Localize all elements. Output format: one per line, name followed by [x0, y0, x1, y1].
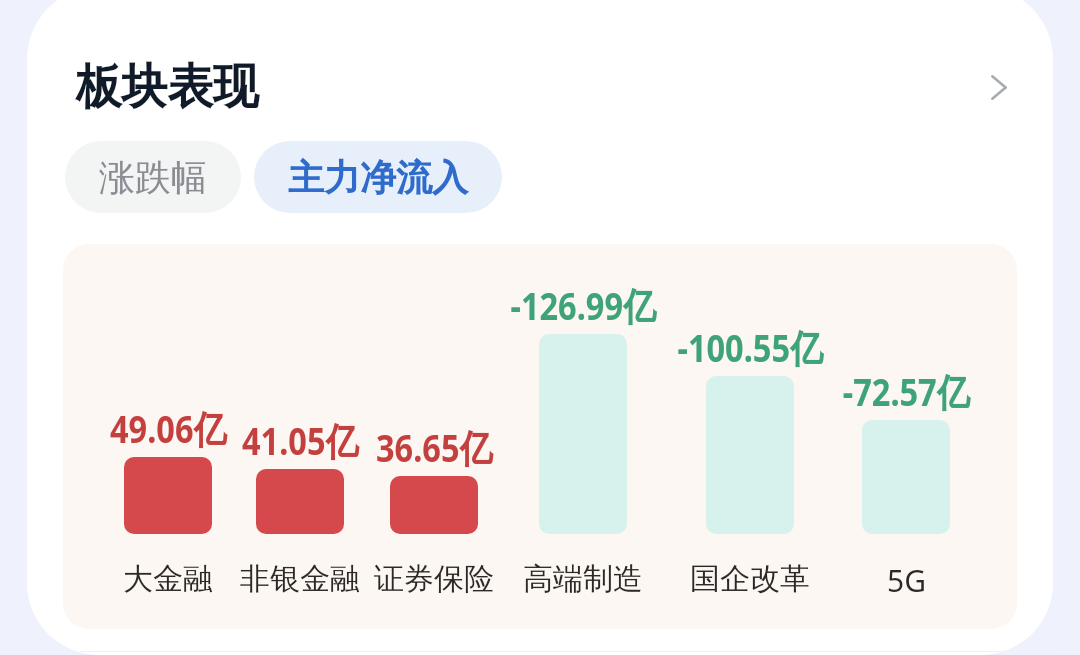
staticText: 涨跌幅 [99, 155, 207, 200]
staticText: 板块表现 [76, 57, 258, 117]
staticText: 证券保险 [374, 560, 494, 598]
button[interactable]: 板块表现 [27, 48, 1053, 126]
staticText: 36.65亿 [376, 421, 492, 473]
staticText: -100.55亿 [677, 321, 823, 373]
button[interactable]: 涨跌幅 [65, 141, 241, 213]
staticText: 5G [887, 560, 926, 601]
button[interactable]: 主力净流入 [254, 141, 502, 213]
staticText: 大金融 [123, 560, 213, 598]
staticText: -126.99亿 [510, 279, 656, 331]
staticText: 49.06亿 [110, 402, 226, 454]
staticText: 41.05亿 [242, 414, 358, 466]
staticText: 高端制造 [523, 560, 643, 598]
staticText: -72.57亿 [843, 365, 969, 417]
staticText: 国企改革 [690, 560, 810, 598]
staticText: 非银金融 [240, 560, 360, 598]
staticText: 主力净流入 [288, 155, 468, 200]
button[interactable]: 查看更多 [970, 58, 1028, 116]
